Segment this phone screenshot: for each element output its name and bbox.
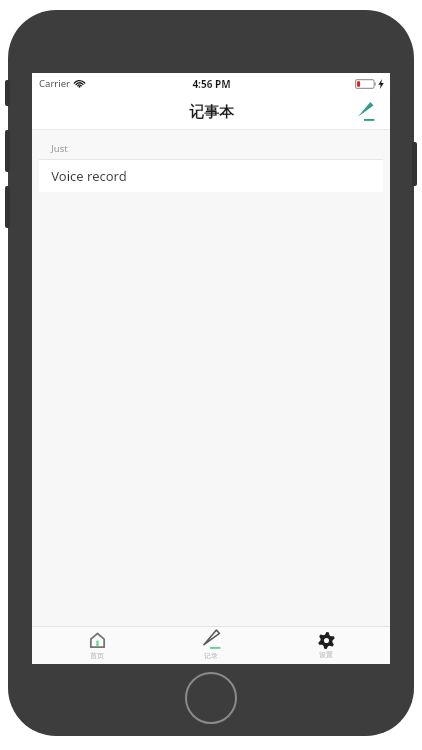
button[interactable]: Notes	[161, 627, 261, 664]
staticText: 首页	[90, 651, 104, 660]
staticText: Just	[51, 142, 68, 155]
staticText: 4:56 PM	[192, 77, 231, 91]
button[interactable]: New note	[348, 95, 382, 129]
button[interactable]: Home	[47, 627, 147, 664]
staticText: 记录	[204, 651, 218, 660]
staticText: Carrier	[39, 77, 70, 90]
staticText: 记事本	[189, 103, 234, 122]
staticText: 设置	[319, 650, 333, 659]
button[interactable]: Voice record	[39, 160, 383, 192]
staticText: Voice record	[51, 167, 127, 185]
button[interactable]: Settings	[276, 627, 376, 664]
